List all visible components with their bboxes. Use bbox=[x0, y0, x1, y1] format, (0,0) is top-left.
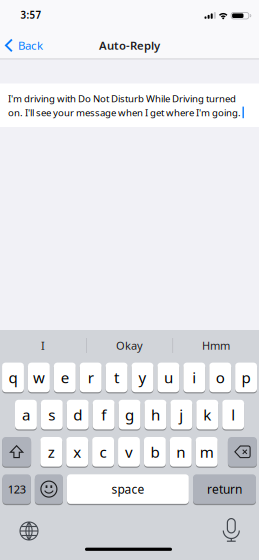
staticText: on. I'll see your message when I get whe… bbox=[8, 106, 241, 119]
staticText: f bbox=[101, 404, 106, 425]
button[interactable]: t bbox=[106, 363, 127, 392]
staticText: v bbox=[125, 441, 133, 462]
staticText: s bbox=[48, 404, 55, 425]
staticText: x bbox=[73, 441, 81, 462]
button[interactable]: c bbox=[92, 437, 114, 467]
button[interactable]: z bbox=[40, 437, 62, 467]
staticText: k bbox=[203, 404, 211, 425]
staticText: d bbox=[73, 404, 82, 425]
staticText: h bbox=[151, 404, 160, 425]
staticText: p bbox=[242, 367, 251, 388]
button[interactable]: f bbox=[93, 400, 115, 429]
staticText: b bbox=[150, 441, 159, 462]
staticText: w bbox=[33, 367, 45, 388]
button[interactable]: w bbox=[28, 363, 50, 392]
staticText: o bbox=[216, 367, 225, 388]
button[interactable]: p bbox=[235, 363, 257, 392]
button[interactable]: Hmm bbox=[174, 331, 258, 359]
staticText: Auto-Reply bbox=[99, 38, 160, 53]
button[interactable]: h bbox=[144, 400, 166, 429]
staticText: Okay bbox=[116, 338, 143, 353]
staticText: 123 bbox=[8, 482, 26, 497]
staticText: I bbox=[41, 338, 45, 353]
staticText: i bbox=[192, 367, 196, 388]
button[interactable]: Shift bbox=[2, 437, 31, 467]
staticText: e bbox=[61, 367, 69, 388]
button[interactable]: n bbox=[170, 437, 192, 467]
button[interactable]: a bbox=[15, 400, 37, 429]
button[interactable]: space bbox=[67, 474, 189, 504]
button[interactable]: e bbox=[54, 363, 76, 392]
button[interactable]: Emoji bbox=[35, 474, 63, 504]
button[interactable]: Okay bbox=[87, 331, 171, 359]
button[interactable]: m bbox=[196, 437, 218, 467]
button[interactable]: x bbox=[66, 437, 88, 467]
button[interactable]: u bbox=[157, 363, 179, 392]
button[interactable]: y bbox=[132, 363, 153, 392]
staticText: l bbox=[231, 404, 235, 425]
staticText: I'm driving with Do Not Disturb While Dr… bbox=[8, 92, 236, 105]
staticText: q bbox=[8, 367, 17, 388]
button[interactable]: Next keyboard bbox=[14, 516, 44, 546]
button[interactable]: l bbox=[222, 400, 244, 429]
button[interactable]: q bbox=[2, 363, 24, 392]
staticText: r bbox=[88, 367, 94, 388]
button[interactable]: r bbox=[80, 363, 102, 392]
button[interactable]: Delete bbox=[228, 437, 257, 467]
button[interactable]: j bbox=[170, 400, 192, 429]
button[interactable]: Back bbox=[2, 31, 48, 60]
button[interactable]: return bbox=[193, 474, 256, 504]
button[interactable]: 123 bbox=[2, 474, 31, 504]
button[interactable]: I bbox=[1, 331, 85, 359]
button[interactable]: s bbox=[41, 400, 63, 429]
button[interactable]: i bbox=[183, 363, 205, 392]
staticText: g bbox=[125, 404, 134, 425]
button[interactable]: Dictation bbox=[216, 515, 246, 545]
staticText: z bbox=[48, 441, 55, 462]
staticText: c bbox=[100, 441, 107, 462]
staticText: Back bbox=[18, 37, 43, 53]
staticText: a bbox=[22, 404, 30, 425]
button[interactable]: b bbox=[144, 437, 166, 467]
button[interactable]: v bbox=[118, 437, 140, 467]
staticText: return bbox=[207, 481, 242, 497]
button[interactable]: o bbox=[209, 363, 231, 392]
staticText: j bbox=[179, 404, 183, 425]
staticText: y bbox=[138, 367, 146, 388]
staticText: t bbox=[114, 367, 119, 388]
button[interactable]: d bbox=[67, 400, 89, 429]
staticText: m bbox=[200, 441, 214, 462]
button[interactable]: k bbox=[196, 400, 218, 429]
staticText: space bbox=[111, 481, 144, 497]
staticText: u bbox=[164, 367, 173, 388]
staticText: n bbox=[176, 441, 185, 462]
staticText: Hmm bbox=[202, 338, 230, 353]
button[interactable]: g bbox=[119, 400, 140, 429]
staticText: 3:57 bbox=[20, 8, 41, 22]
